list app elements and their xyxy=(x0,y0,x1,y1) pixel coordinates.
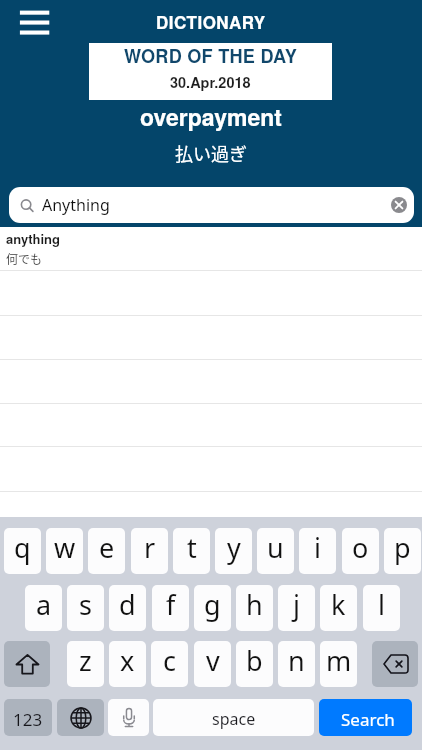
staticText: p xyxy=(394,529,411,566)
staticText: e xyxy=(99,529,115,566)
staticText: anything xyxy=(6,229,60,248)
button[interactable]: v xyxy=(194,641,231,687)
button[interactable]: g xyxy=(194,585,231,631)
staticText: c xyxy=(163,642,176,679)
button[interactable]: m xyxy=(320,641,357,687)
staticText: Anything xyxy=(42,194,110,216)
button[interactable]: l xyxy=(363,585,400,631)
button[interactable]: Dictate xyxy=(108,699,149,736)
button[interactable]: Next keyboard xyxy=(57,699,104,736)
button[interactable]: a xyxy=(25,585,62,631)
button[interactable]: Clear text xyxy=(389,195,409,215)
staticText: a xyxy=(36,586,52,623)
button[interactable]: n xyxy=(278,641,315,687)
button[interactable]: e xyxy=(88,528,125,574)
staticText: k xyxy=(331,586,346,623)
button[interactable]: i xyxy=(299,528,336,574)
button[interactable]: t xyxy=(173,528,210,574)
staticText: f xyxy=(166,586,176,623)
staticText: 払い過ぎ xyxy=(175,140,247,166)
button[interactable]: f xyxy=(152,585,189,631)
staticText: q xyxy=(14,529,31,566)
staticText: x xyxy=(120,642,135,679)
staticText: w xyxy=(54,529,76,566)
button[interactable]: Menu xyxy=(17,5,53,37)
button[interactable]: o xyxy=(342,528,379,574)
button[interactable]: u xyxy=(257,528,294,574)
staticText: l xyxy=(378,586,385,623)
staticText: h xyxy=(246,586,263,623)
button[interactable]: WORD OF THE DAY xyxy=(89,43,332,100)
staticText: i xyxy=(314,529,321,566)
staticText: d xyxy=(119,586,136,623)
staticText: r xyxy=(144,529,156,566)
staticText: m xyxy=(326,642,352,679)
staticText: y xyxy=(227,529,241,566)
button[interactable]: x xyxy=(109,641,146,687)
button[interactable]: Numbers xyxy=(4,699,52,736)
staticText: t xyxy=(187,529,197,566)
staticText: 123 xyxy=(13,708,43,731)
button[interactable]: d xyxy=(109,585,146,631)
button[interactable]: z xyxy=(67,641,104,687)
button[interactable]: b xyxy=(236,641,273,687)
staticText: 何でも xyxy=(6,250,43,267)
staticText: WORD OF THE DAY xyxy=(124,43,298,69)
staticText: space xyxy=(212,708,256,730)
button[interactable]: j xyxy=(278,585,315,631)
button[interactable]: c xyxy=(151,641,188,687)
button[interactable]: y xyxy=(215,528,252,574)
staticText: v xyxy=(206,642,220,679)
staticText: overpayment xyxy=(140,100,282,133)
staticText: b xyxy=(246,642,263,679)
button[interactable]: space xyxy=(153,699,314,736)
staticText: g xyxy=(204,586,221,623)
button[interactable]: h xyxy=(236,585,273,631)
button[interactable]: Shift xyxy=(4,641,50,687)
staticText: u xyxy=(267,529,284,566)
staticText: o xyxy=(352,529,369,566)
button[interactable]: w xyxy=(46,528,83,574)
staticText: 30.Apr.2018 xyxy=(170,72,251,93)
staticText: j xyxy=(293,586,300,623)
button[interactable]: p xyxy=(384,528,421,574)
staticText: s xyxy=(79,586,92,623)
button[interactable]: r xyxy=(131,528,168,574)
button[interactable]: s xyxy=(67,585,104,631)
staticText: Search xyxy=(341,708,395,731)
button[interactable]: k xyxy=(320,585,357,631)
staticText: z xyxy=(79,642,92,679)
staticText: n xyxy=(288,642,305,679)
button[interactable]: q xyxy=(4,528,41,574)
button[interactable]: Search xyxy=(319,699,412,736)
staticText: DICTIONARY xyxy=(156,10,266,34)
button[interactable]: Anything xyxy=(9,187,414,223)
button[interactable]: anything xyxy=(0,227,422,270)
button[interactable]: Backspace xyxy=(372,641,418,687)
